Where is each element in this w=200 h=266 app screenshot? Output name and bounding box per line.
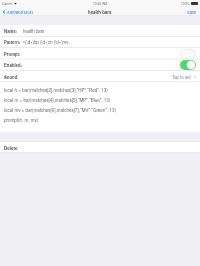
staticText: health bars	[23, 28, 45, 34]
button[interactable]: Enabled:	[0, 59, 200, 70]
staticText: Name:	[4, 28, 18, 34]
staticText: local mv = bar(matches[6],matches[7],"MV…	[4, 107, 116, 113]
other: Back	[2, 10, 6, 14]
staticText: local m = bar(matches[4],matches[5],"MP"…	[4, 97, 111, 103]
button[interactable]: Delete	[0, 142, 200, 153]
staticText: ^(\d+)hp (\d+)m (\d+)mv	[23, 39, 69, 45]
staticText: prompt(h, m, mv)	[4, 117, 39, 123]
button[interactable]: Save	[187, 9, 197, 15]
staticText: health bars	[88, 9, 112, 15]
button[interactable]: Prompt:	[0, 48, 200, 59]
button[interactable]: Back	[2, 9, 34, 15]
staticText: Delete	[4, 145, 18, 151]
staticText: Aardwolf MUD	[7, 9, 34, 15]
staticText: Prompt:	[4, 51, 21, 57]
staticText: 100%	[181, 1, 190, 6]
staticText: Save	[187, 9, 197, 15]
staticText: local h = bar(matches[2],matches[3],"HP"…	[4, 87, 108, 93]
staticText: Enabled:	[4, 62, 23, 68]
button[interactable]: Pattern:	[0, 36, 200, 47]
staticText: 10:45 AM	[93, 1, 108, 6]
other: Enabled, on	[180, 60, 196, 70]
other: Prompt, off	[180, 49, 196, 59]
staticText: Tap to set	[172, 74, 191, 80]
staticText: Sound	[4, 74, 18, 80]
button[interactable]: Sound	[0, 71, 200, 82]
button[interactable]: Name:	[0, 25, 200, 36]
staticText: Pattern:	[4, 39, 21, 45]
staticText: Carrier	[2, 1, 13, 6]
